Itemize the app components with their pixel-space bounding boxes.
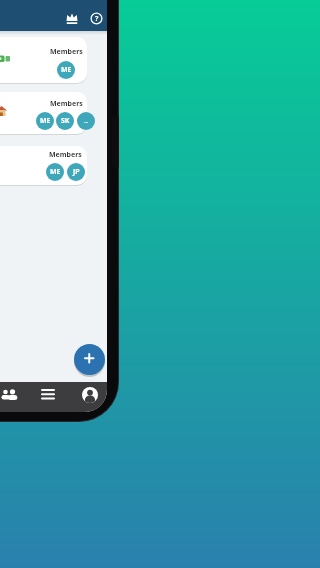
button[interactable]: JP <box>67 163 85 181</box>
button[interactable]: ME <box>36 112 54 130</box>
button[interactable]: ... <box>77 112 95 130</box>
staticText: ME <box>40 116 51 126</box>
button[interactable] <box>41 389 55 401</box>
button[interactable]: ME <box>46 163 64 181</box>
button[interactable] <box>1 388 19 402</box>
button[interactable] <box>74 344 105 375</box>
staticText: ME <box>50 167 61 177</box>
staticText: ? <box>95 14 99 24</box>
button[interactable]: ? <box>90 12 103 25</box>
button[interactable] <box>0 37 87 83</box>
button[interactable] <box>0 0 107 31</box>
staticText: Members <box>50 47 83 57</box>
button[interactable]: ME <box>57 61 75 79</box>
button[interactable] <box>0 146 87 185</box>
button[interactable] <box>66 13 78 24</box>
staticText: JP <box>73 167 80 177</box>
staticText: ... <box>84 118 89 125</box>
staticText: Members <box>49 150 82 160</box>
button[interactable] <box>82 387 98 403</box>
staticText: ME <box>61 65 72 75</box>
staticText: Members <box>50 99 83 109</box>
button[interactable]: SK <box>56 112 74 130</box>
staticText: SK <box>61 116 70 126</box>
button[interactable] <box>0 92 87 134</box>
